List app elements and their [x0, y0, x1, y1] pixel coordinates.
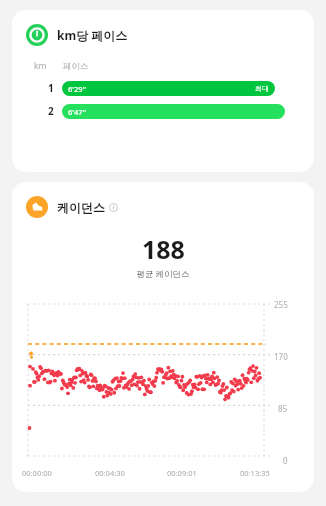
staticText: 2 — [48, 104, 54, 118]
staticText: 00:00:00 — [22, 468, 52, 478]
button[interactable]: 정보 — [109, 203, 118, 212]
button[interactable]: km당 페이스 — [12, 10, 314, 172]
staticText: 00:09:01 — [167, 468, 197, 478]
staticText: 255 — [274, 299, 288, 310]
staticText: 6'29" — [68, 84, 86, 94]
staticText: 페이스 — [63, 61, 89, 72]
staticText: 00:04:30 — [95, 468, 125, 478]
staticText: 6'47" — [68, 107, 86, 117]
button[interactable]: 1 — [12, 80, 314, 96]
staticText: 최대 — [255, 84, 269, 93]
staticText: 188 — [142, 232, 185, 266]
staticText: 0 — [283, 455, 288, 466]
button[interactable]: 2 — [12, 103, 314, 119]
staticText: 00:13:35 — [240, 468, 270, 478]
staticText: 170 — [274, 351, 288, 362]
staticText: km당 페이스 — [57, 27, 128, 43]
staticText: 1 — [48, 81, 54, 95]
staticText: 케이던스 — [57, 200, 105, 215]
staticText: 평균 케이던스 — [136, 268, 190, 280]
staticText: 85 — [278, 403, 288, 414]
staticText: km — [34, 60, 47, 72]
button[interactable]: 케이던스 — [12, 182, 314, 492]
